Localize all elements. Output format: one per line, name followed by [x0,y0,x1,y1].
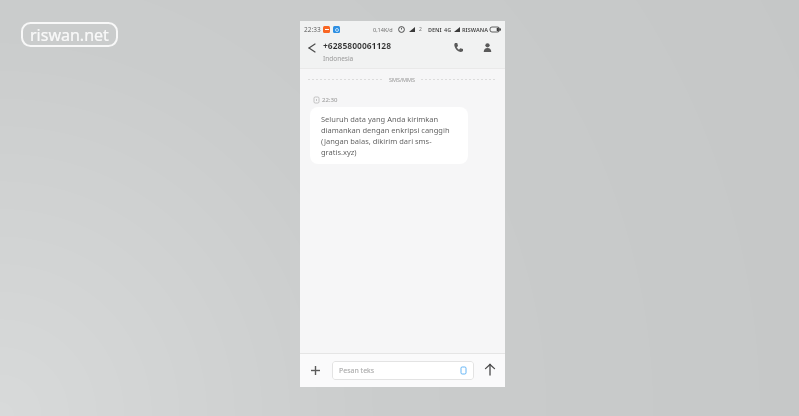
staticText: RISWANA [462,26,488,33]
staticText: 22:30 [322,96,338,104]
button[interactable]: riswan.net [21,22,118,47]
staticText: 22:33 [304,25,321,34]
button[interactable] [304,40,319,55]
button[interactable]: Pesan teks [332,361,474,380]
button[interactable] [306,361,325,380]
staticText: 0,14K/d [373,26,393,33]
staticText: +6285800061128 [323,40,392,52]
button[interactable]: Seluruh data yang Anda kirimkan diamanka… [310,107,468,164]
staticText: SMS/MMS [389,76,416,83]
button[interactable] [480,360,499,379]
button[interactable] [479,38,496,56]
staticText: 4G [444,26,452,33]
staticText: DENI [428,26,442,33]
staticText: Pesan teks [339,366,375,376]
staticText: Seluruh data yang Anda kirimkan diamanka… [321,114,450,157]
staticText: 2 [419,26,422,33]
staticText: riswan.net [30,24,109,46]
staticText: Indonesia [323,54,354,63]
button[interactable] [450,38,467,56]
